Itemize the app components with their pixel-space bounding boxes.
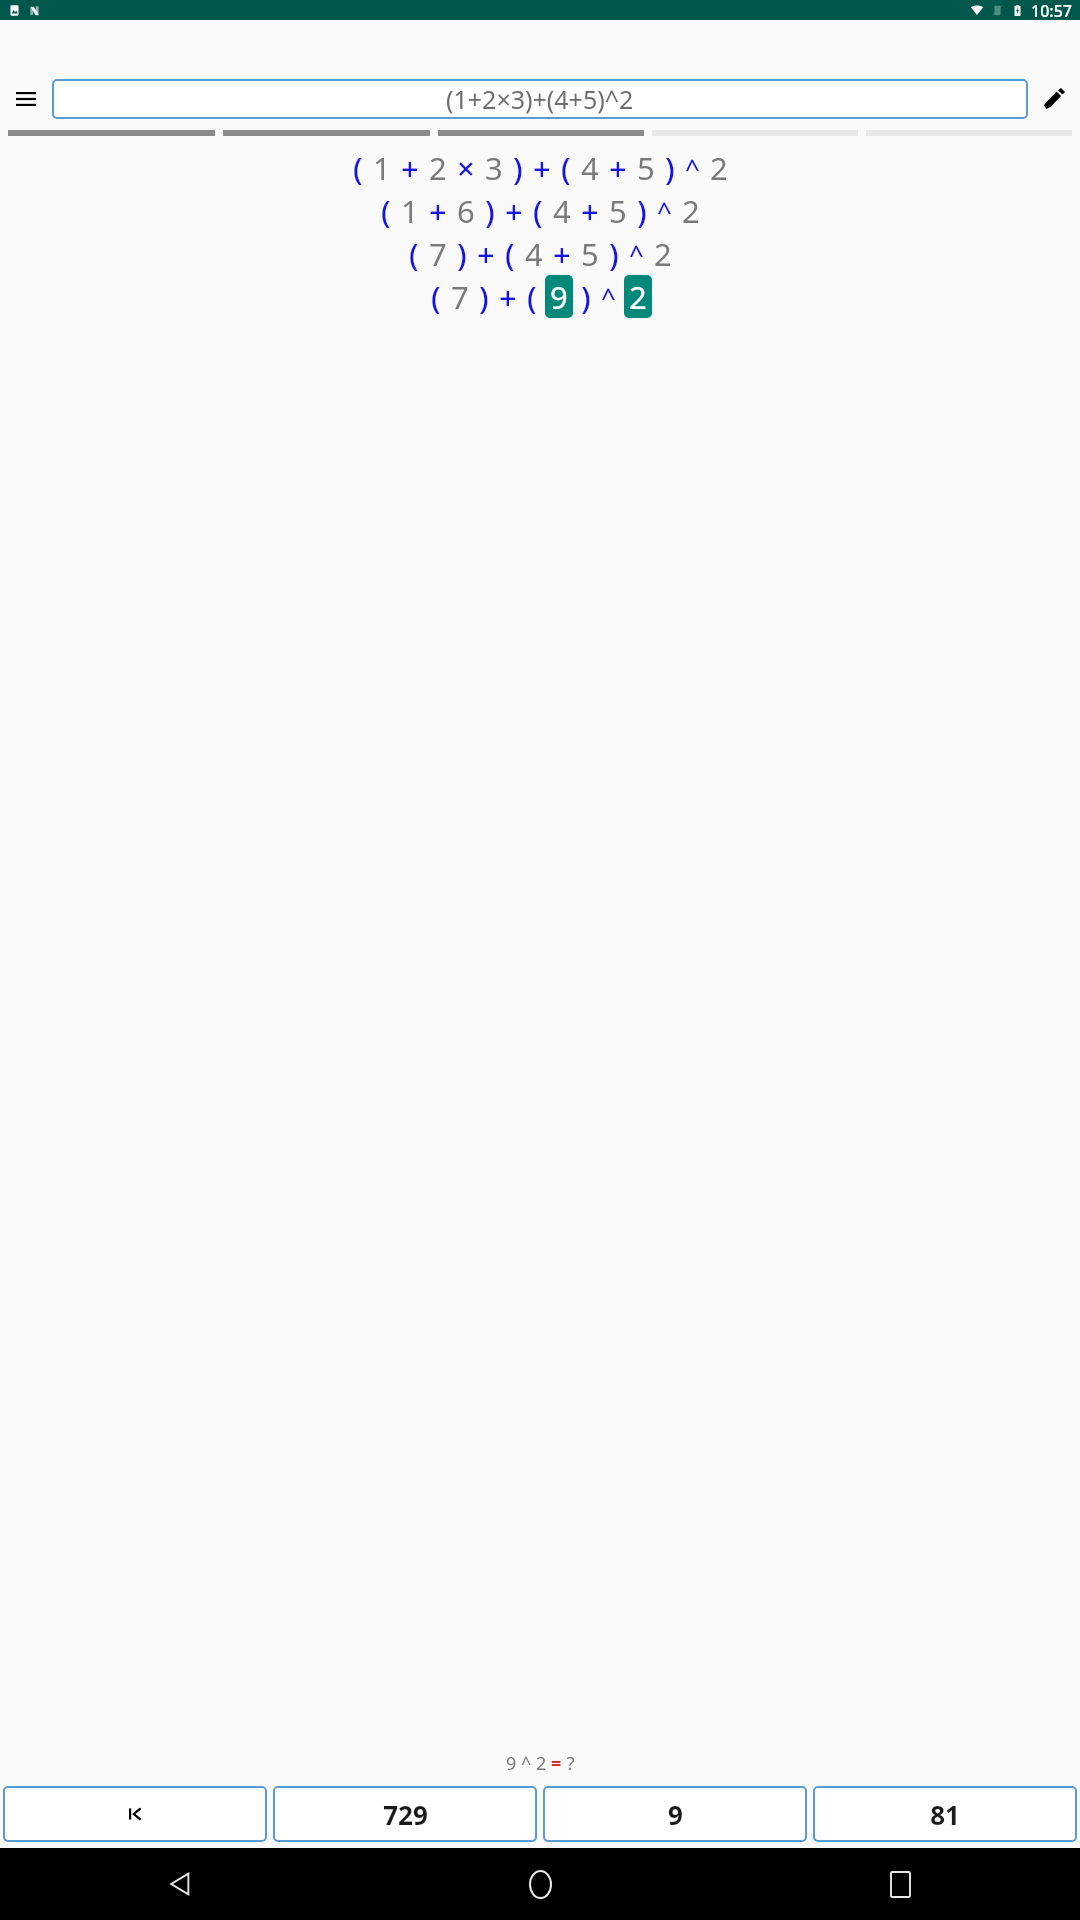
staticText: 9 ^ 2 <box>506 1751 551 1776</box>
staticText: + <box>401 147 419 189</box>
staticText: 6 <box>457 190 475 232</box>
button[interactable]: 81 <box>813 1786 1077 1842</box>
staticText: 5 <box>581 233 599 275</box>
staticText: 9 <box>550 276 568 317</box>
staticText: ) <box>457 233 467 275</box>
staticText: 729 <box>383 1797 428 1832</box>
staticText: ) <box>485 190 495 232</box>
button[interactable]: Recents <box>720 1848 1080 1920</box>
staticText: ^ <box>629 236 644 271</box>
staticText: + <box>477 233 495 275</box>
button[interactable]: (1+2×3)+(4+5)^2 <box>52 79 1028 119</box>
staticText: + <box>533 147 551 189</box>
staticText: 2 <box>710 147 728 189</box>
button[interactable]: Back <box>0 1848 360 1920</box>
staticText: + <box>581 190 599 232</box>
staticText: ( <box>505 233 515 275</box>
staticText: 10:57 <box>1031 0 1072 20</box>
staticText: 4 <box>525 233 543 275</box>
staticText: 4 <box>553 190 571 232</box>
button[interactable]: 729 <box>273 1786 537 1842</box>
staticText: 2 <box>629 276 647 317</box>
staticText: 2 <box>682 190 700 232</box>
staticText: 1 <box>373 147 391 189</box>
staticText: ( <box>353 147 363 189</box>
button[interactable]: Home <box>360 1848 720 1920</box>
staticText: 5 <box>637 147 655 189</box>
button[interactable]: Edit <box>1028 75 1080 122</box>
staticText: (1+2×3)+(4+5)^2 <box>446 82 634 116</box>
staticText: ( <box>409 233 419 275</box>
staticText: ? <box>562 1751 575 1776</box>
staticText: ) <box>637 190 647 232</box>
staticText: 9 <box>668 1797 683 1832</box>
staticText: + <box>429 190 447 232</box>
staticText: ^ <box>657 193 672 228</box>
staticText: = <box>551 1751 562 1776</box>
staticText: 2 <box>654 233 672 275</box>
staticText: ( <box>527 276 537 318</box>
staticText: + <box>553 233 571 275</box>
staticText: 2 <box>429 147 447 189</box>
staticText: 3 <box>485 147 503 189</box>
staticText: 7 <box>451 276 469 318</box>
staticText: 4 <box>581 147 599 189</box>
staticText: + <box>499 276 517 318</box>
staticText: ) <box>513 147 523 189</box>
button[interactable]: 9 <box>543 1786 807 1842</box>
staticText: ( <box>381 190 391 232</box>
staticText: + <box>505 190 523 232</box>
staticText: 5 <box>609 190 627 232</box>
staticText: 1 <box>401 190 419 232</box>
staticText: 7 <box>429 233 447 275</box>
staticText: × <box>457 147 475 189</box>
staticText: 81 <box>930 1797 960 1832</box>
staticText: ( <box>561 147 571 189</box>
staticText: ) <box>479 276 489 318</box>
staticText: ) <box>665 147 675 189</box>
staticText: ( <box>431 276 441 318</box>
staticText: ^ <box>601 279 616 314</box>
button[interactable]: Restart <box>3 1786 267 1842</box>
button[interactable]: Menu <box>0 75 52 122</box>
staticText: + <box>609 147 627 189</box>
staticText: ^ <box>685 150 700 185</box>
staticText: ) <box>581 276 591 318</box>
staticText: ) <box>609 233 619 275</box>
staticText: ( <box>533 190 543 232</box>
